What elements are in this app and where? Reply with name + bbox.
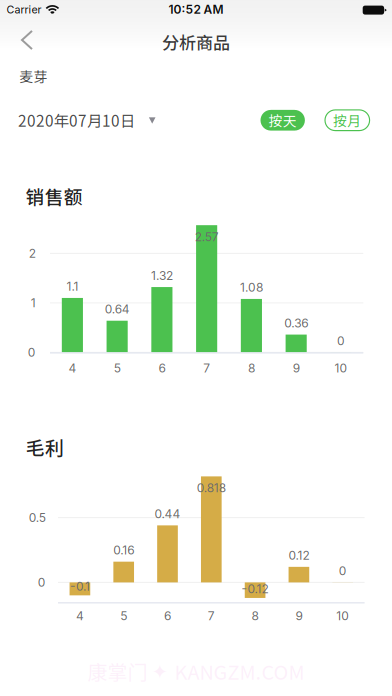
staticText: 8 [252,609,259,623]
staticText: 销售额 [26,182,83,209]
staticText: 0.16 [113,543,134,557]
staticText: -0.1 [70,579,90,594]
staticText: 1.32 [151,268,173,283]
staticText: 1 [31,296,36,310]
staticText: 2020年07月10日 [18,109,135,131]
button[interactable]: 按天 [0,0,44,21]
staticText: 6 [158,361,165,375]
staticText: 康掌门 ✦ KANGZM.COM [87,657,304,685]
staticText: 10:52 AM [168,2,223,17]
staticText: 9 [295,609,302,623]
staticText: 按天 [269,110,297,130]
button[interactable]: 2020年07月10日 [0,0,150,28]
staticText: 0 [28,345,36,360]
button[interactable]: 选择日期 [0,0,16,16]
staticText: 5 [120,609,127,623]
button[interactable]: Back [0,0,42,44]
staticText: 麦芽 [19,66,47,86]
staticText: 毛利 [26,433,64,460]
staticText: 6 [164,609,171,623]
staticText: -0.12 [242,582,269,596]
button[interactable]: 按月 [0,0,45,21]
staticText: 0 [337,334,345,348]
staticText: 0.12 [288,548,309,563]
staticText: 分析商品 [162,29,230,54]
staticText: 2.57 [195,229,219,244]
staticText: 1.1 [66,279,78,294]
staticText: 7 [208,609,215,623]
staticText: 按月 [333,110,361,130]
staticText: Carrier [6,3,41,16]
staticText: 10 [334,361,347,375]
staticText: 7 [203,361,210,375]
staticText: 1.08 [240,280,263,295]
staticText: 9 [293,361,300,375]
staticText: 2 [29,246,36,261]
staticText: 0 [339,564,347,578]
staticText: 0.64 [105,302,130,316]
staticText: 8 [248,361,255,375]
staticText: 4 [68,361,76,375]
staticText: 0.44 [154,507,180,521]
staticText: 0.36 [284,316,308,330]
staticText: 0.5 [29,510,46,525]
staticText: 0.818 [197,480,226,495]
staticText: 4 [76,609,84,623]
staticText: 0 [38,575,46,590]
staticText: 10 [336,609,349,623]
staticText: 5 [114,361,121,375]
